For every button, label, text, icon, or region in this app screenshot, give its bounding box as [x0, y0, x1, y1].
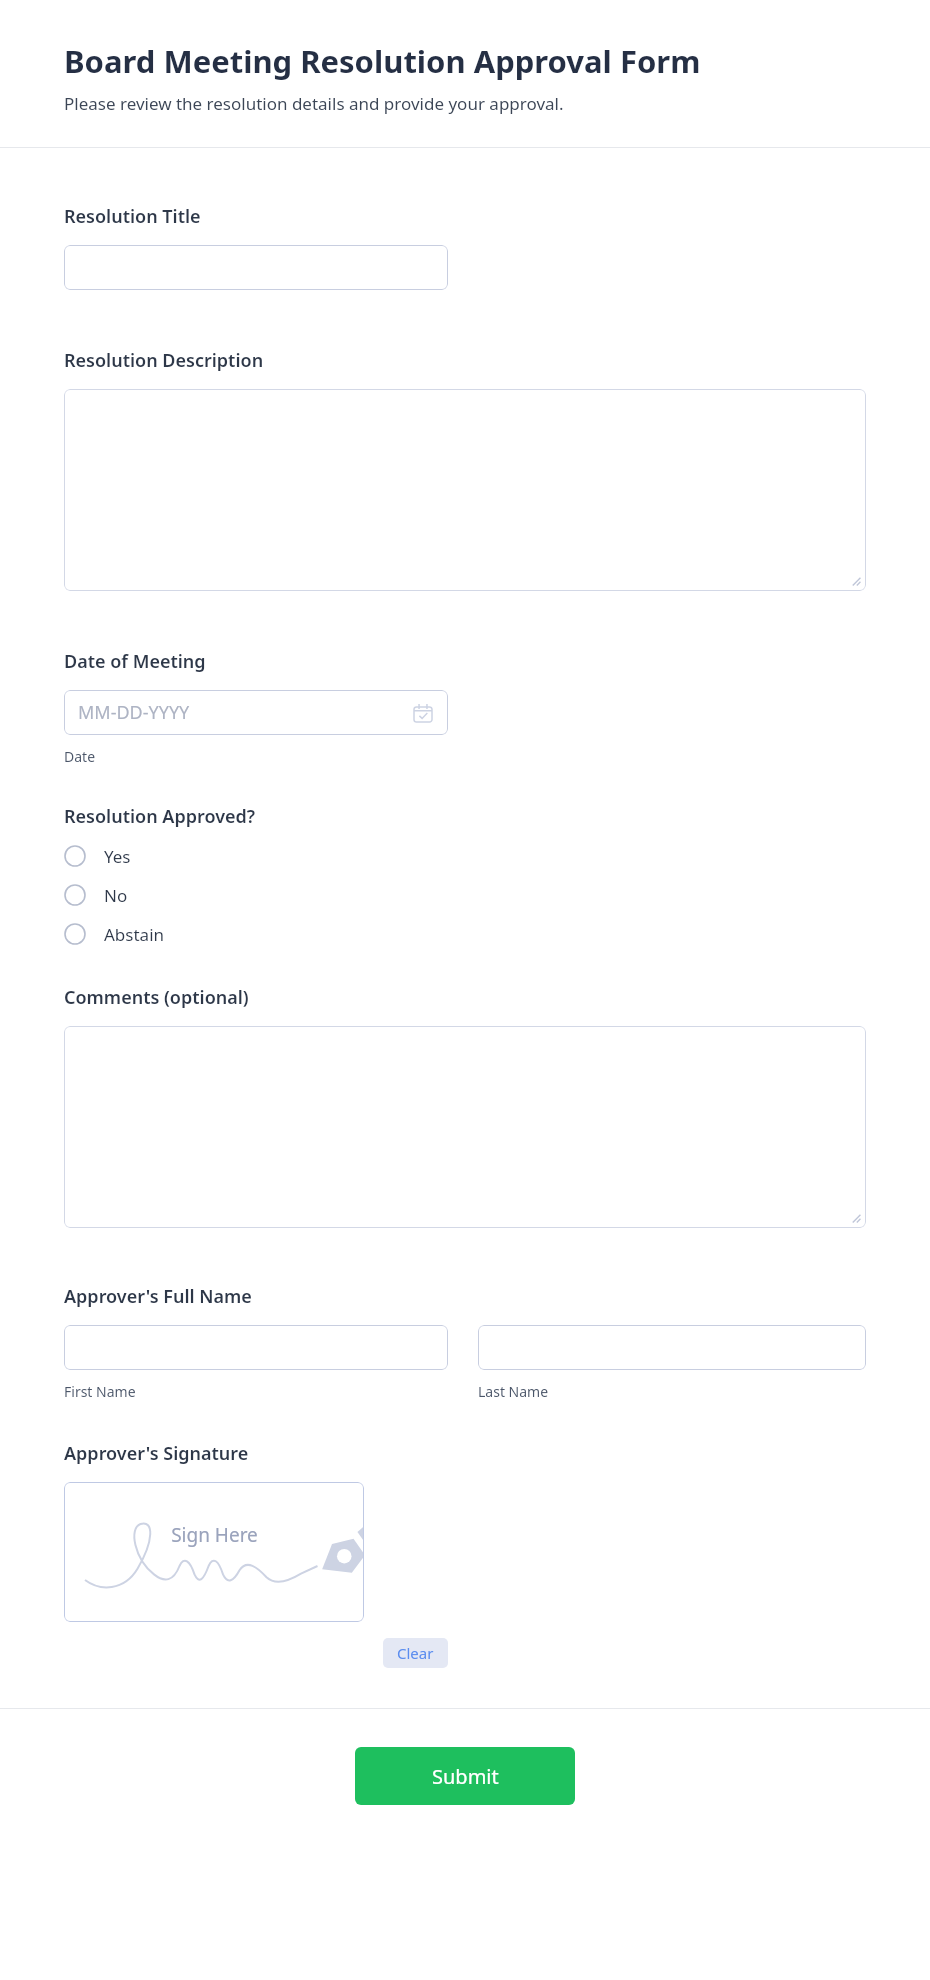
- staticText: Submit: [432, 1763, 499, 1790]
- button[interactable]: Clear: [383, 1638, 448, 1668]
- button[interactable]: Submit: [355, 1747, 575, 1805]
- staticText: Yes: [104, 845, 131, 867]
- staticText: Comments (optional): [64, 985, 249, 1010]
- button[interactable]: [64, 389, 866, 591]
- staticText: Resolution Description: [64, 348, 264, 373]
- button[interactable]: [64, 1026, 866, 1228]
- button[interactable]: [64, 1325, 448, 1370]
- button[interactable]: No: [64, 884, 404, 906]
- staticText: Board Meeting Resolution Approval Form: [64, 40, 701, 82]
- button[interactable]: Yes: [64, 845, 404, 867]
- button[interactable]: Abstain: [64, 923, 404, 945]
- button[interactable]: Signature pad: [64, 1482, 364, 1622]
- staticText: Date: [64, 747, 96, 766]
- button[interactable]: [478, 1325, 866, 1370]
- staticText: Resolution Approved?: [64, 804, 256, 829]
- button[interactable]: MM-DD-YYYY: [64, 690, 448, 735]
- staticText: Please review the resolution details and…: [64, 92, 564, 115]
- staticText: Approver's Full Name: [64, 1284, 252, 1309]
- staticText: Date of Meeting: [64, 649, 206, 674]
- staticText: Approver's Signature: [64, 1441, 249, 1466]
- staticText: Abstain: [104, 923, 165, 945]
- staticText: Resolution Title: [64, 204, 201, 229]
- staticText: Sign Here: [171, 1522, 258, 1548]
- button[interactable]: [64, 245, 448, 290]
- other: Open calendar: [414, 704, 432, 722]
- staticText: First Name: [64, 1382, 136, 1401]
- staticText: MM-DD-YYYY: [78, 700, 190, 725]
- staticText: No: [104, 884, 128, 906]
- staticText: Last Name: [478, 1382, 549, 1401]
- staticText: Clear: [397, 1643, 434, 1663]
